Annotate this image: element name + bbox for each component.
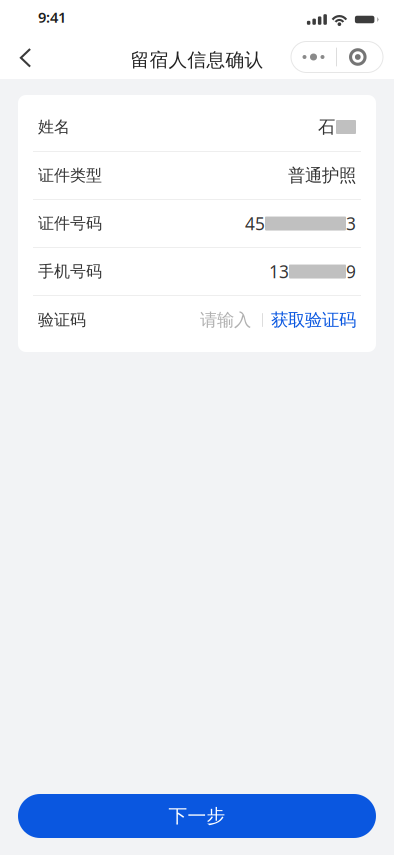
staticText: 普通护照: [288, 165, 356, 186]
staticText: 证件类型: [38, 166, 102, 185]
staticText: 13: [269, 260, 289, 283]
staticText: 手机号码: [38, 262, 102, 281]
button[interactable]: 返回: [0, 32, 51, 80]
staticText: 请输入: [200, 309, 251, 331]
staticText: 3: [346, 212, 356, 235]
staticText: 留宿人信息确认: [130, 48, 263, 71]
button[interactable]: 下一步: [18, 794, 376, 838]
staticText: 9: [346, 260, 356, 283]
staticText: 获取验证码: [271, 309, 356, 331]
staticText: 姓名: [38, 117, 70, 137]
button[interactable]: 更多: [291, 40, 383, 72]
staticText: 石: [318, 116, 335, 138]
staticText: 45: [245, 212, 265, 235]
staticText: 下一步: [168, 804, 225, 827]
staticText: 验证码: [38, 310, 86, 330]
staticText: 证件号码: [38, 214, 102, 233]
staticText: 9:41: [38, 7, 66, 27]
button[interactable]: 获取验证码: [271, 309, 356, 331]
